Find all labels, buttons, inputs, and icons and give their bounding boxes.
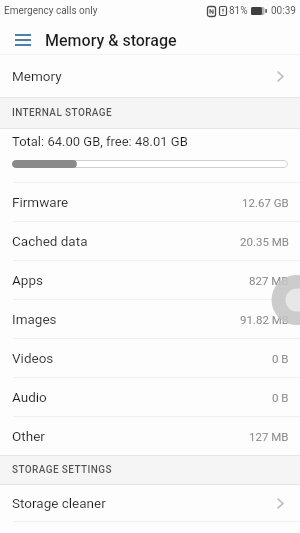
button[interactable]: Videos [0,339,300,377]
staticText: 0 B [272,391,289,404]
staticText: 0 B [272,352,289,365]
button[interactable]: Audio [0,378,300,416]
staticText: 20.35 MB [240,235,289,248]
staticText: Firmware [12,194,69,210]
button[interactable]: Images [0,300,300,338]
button[interactable] [0,26,45,54]
staticText: Images [12,311,57,327]
staticText: Total: 64.00 GB, free: 48.01 GB [12,134,188,149]
staticText: INTERNAL STORAGE [12,107,113,119]
button[interactable]: Firmware [0,183,300,221]
staticText: 827 MB [249,274,289,287]
staticText: 91.82 MB [240,313,289,326]
button[interactable]: Apps [0,261,300,299]
staticText: STORAGE SETTINGS [12,464,112,476]
staticText: 81% [229,5,248,17]
button[interactable]: Other [0,417,300,455]
staticText: Memory [12,68,62,84]
button[interactable]: Cached data [0,222,300,260]
staticText: 00:39 [271,5,296,17]
staticText: 12.67 GB [242,196,289,209]
button[interactable]: Storage cleaner [0,485,300,521]
staticText: Videos [12,350,54,366]
staticText: Memory & storage [45,31,177,50]
button[interactable]: Memory [0,55,300,97]
staticText: Cached data [12,233,88,249]
staticText: Other [12,428,45,444]
staticText: 127 MB [249,430,289,443]
staticText: Apps [12,272,43,288]
staticText: Storage cleaner [12,495,106,511]
staticText: Audio [12,389,47,405]
staticText: Emergency calls only [4,5,98,17]
